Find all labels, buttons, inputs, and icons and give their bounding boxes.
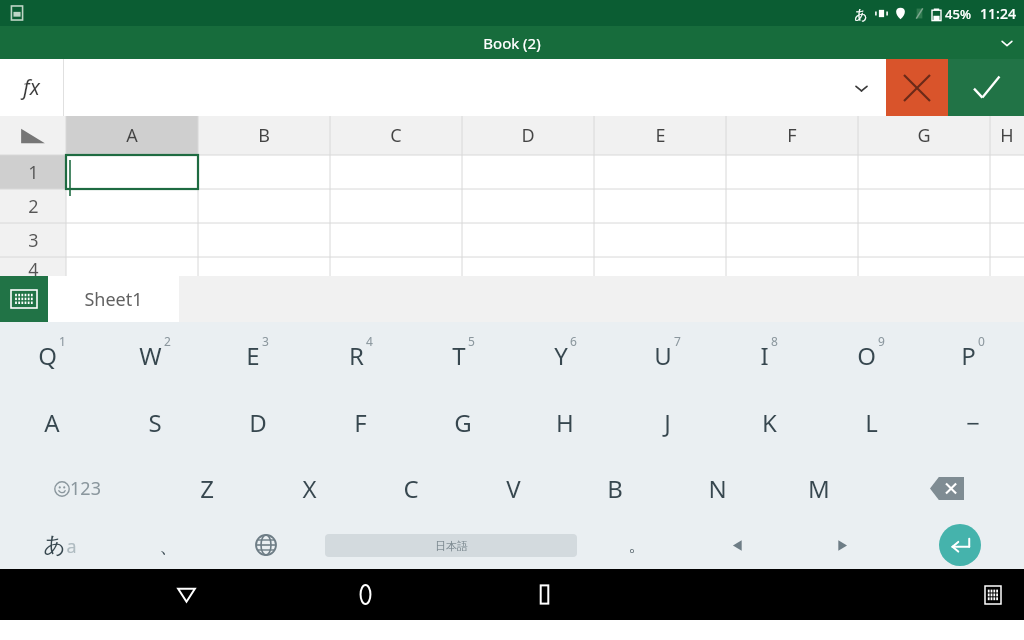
- button[interactable]: M: [768, 455, 870, 521]
- staticText: あ: [854, 6, 868, 22]
- staticText: E: [655, 123, 666, 148]
- button[interactable]: I: [718, 322, 820, 389]
- button[interactable]: 、: [120, 521, 217, 569]
- staticText: F: [354, 406, 367, 439]
- button[interactable]: E: [594, 116, 726, 155]
- staticText: 2: [164, 333, 171, 349]
- button[interactable]: C: [360, 455, 462, 521]
- button[interactable]: Cursor right: [790, 521, 895, 569]
- button[interactable]: Home: [338, 569, 392, 620]
- staticText: 6: [570, 333, 577, 349]
- staticText: 45%: [945, 5, 971, 23]
- button[interactable]: H: [514, 389, 616, 455]
- button[interactable]: N: [666, 455, 768, 521]
- button[interactable]: 2: [0, 189, 66, 223]
- staticText: G: [917, 123, 931, 148]
- staticText: 8: [771, 333, 778, 349]
- button[interactable]: Book (2): [0, 26, 1024, 59]
- button[interactable]: A: [0, 389, 103, 455]
- staticText: fx: [23, 73, 40, 102]
- staticText: A: [44, 406, 60, 439]
- button[interactable]: Recents: [517, 569, 571, 620]
- button[interactable]: Z: [155, 455, 258, 521]
- staticText: S: [148, 406, 162, 439]
- staticText: 123: [70, 476, 101, 501]
- button[interactable]: T: [412, 322, 514, 389]
- staticText: T: [452, 339, 466, 372]
- button[interactable]: [64, 59, 886, 116]
- button[interactable]: D: [206, 389, 309, 455]
- staticText: a: [66, 534, 77, 559]
- staticText: X: [302, 472, 317, 505]
- button[interactable]: Keyboard: [0, 276, 48, 322]
- button[interactable]: 日本語: [325, 534, 577, 557]
- button[interactable]: Backspace: [870, 455, 1024, 521]
- button[interactable]: G: [858, 116, 990, 155]
- staticText: D: [249, 406, 267, 439]
- staticText: G: [454, 406, 472, 439]
- staticText: Q: [38, 339, 57, 372]
- staticText: あ: [43, 531, 66, 559]
- button[interactable]: O: [820, 322, 922, 389]
- staticText: D: [521, 123, 535, 148]
- staticText: O: [857, 339, 876, 372]
- button[interactable]: B: [564, 455, 666, 521]
- button[interactable]: Switch keyboard: [966, 569, 1020, 620]
- button[interactable]: J: [616, 389, 718, 455]
- staticText: Z: [200, 472, 214, 505]
- staticText: C: [403, 472, 419, 505]
- button[interactable]: W: [103, 322, 206, 389]
- button[interactable]: L: [820, 389, 922, 455]
- staticText: Sheet1: [84, 287, 143, 312]
- button[interactable]: Q: [0, 322, 103, 389]
- button[interactable]: S: [103, 389, 206, 455]
- button[interactable]: 。: [588, 521, 685, 569]
- button[interactable]: X: [258, 455, 360, 521]
- staticText: 4: [366, 333, 373, 349]
- button[interactable]: H: [990, 116, 1024, 155]
- button[interactable]: Function: [0, 59, 63, 116]
- button[interactable]: Y: [514, 322, 616, 389]
- staticText: 3: [262, 333, 269, 349]
- button[interactable]: 123: [0, 455, 155, 521]
- button[interactable]: 4: [0, 257, 66, 276]
- button[interactable]: Expand: [990, 26, 1024, 59]
- button[interactable]: Change language: [217, 521, 314, 569]
- button[interactable]: C: [330, 116, 462, 155]
- button[interactable]: F: [309, 389, 412, 455]
- button[interactable]: U: [616, 322, 718, 389]
- staticText: B: [607, 472, 623, 505]
- button[interactable]: 3: [0, 223, 66, 257]
- button[interactable]: あ: [0, 521, 120, 569]
- staticText: U: [654, 339, 672, 372]
- staticText: 3: [28, 228, 39, 253]
- staticText: Y: [554, 339, 568, 372]
- staticText: 。: [628, 534, 646, 557]
- button[interactable]: G: [412, 389, 514, 455]
- staticText: 日本語: [435, 539, 468, 553]
- staticText: A: [126, 123, 138, 148]
- button[interactable]: R: [309, 322, 412, 389]
- staticText: K: [762, 406, 777, 439]
- button[interactable]: Sheet1: [48, 276, 179, 322]
- button[interactable]: Back: [159, 569, 213, 620]
- staticText: B: [258, 123, 270, 148]
- staticText: E: [246, 339, 260, 372]
- button[interactable]: A: [66, 116, 198, 155]
- button[interactable]: Cancel: [886, 59, 948, 116]
- staticText: R: [349, 339, 364, 372]
- button[interactable]: 1: [0, 155, 66, 189]
- button[interactable]: V: [462, 455, 564, 521]
- button[interactable]: Enter: [939, 524, 981, 566]
- button[interactable]: −: [922, 389, 1024, 455]
- button[interactable]: F: [726, 116, 858, 155]
- button[interactable]: Cursor left: [685, 521, 790, 569]
- button[interactable]: E: [206, 322, 309, 389]
- button[interactable]: D: [462, 116, 594, 155]
- button[interactable]: P: [922, 322, 1024, 389]
- staticText: I: [760, 339, 769, 372]
- staticText: N: [708, 472, 727, 505]
- button[interactable]: Confirm: [948, 59, 1024, 116]
- button[interactable]: K: [718, 389, 820, 455]
- button[interactable]: B: [198, 116, 330, 155]
